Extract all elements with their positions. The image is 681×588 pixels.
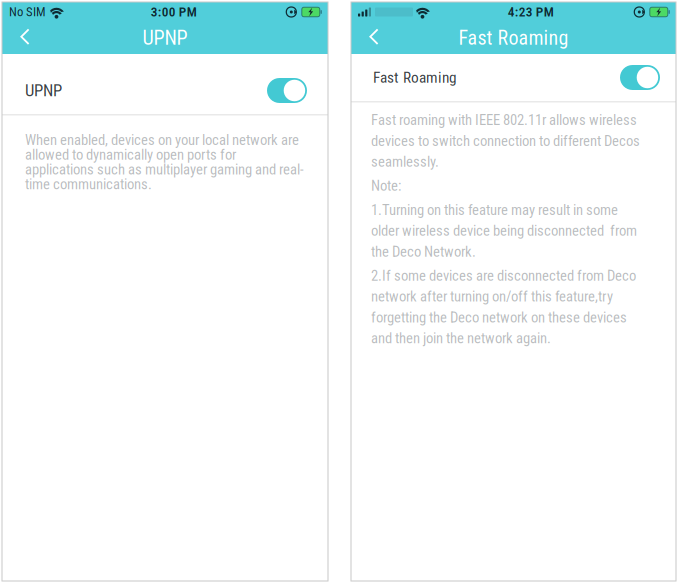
staticText: Fast Roaming xyxy=(458,26,568,50)
staticText: Fast roaming with IEEE 802.11r allows wi… xyxy=(371,111,640,170)
button[interactable]: Toggle UPNP xyxy=(267,78,307,103)
button[interactable]: Back xyxy=(2,22,41,53)
staticText: UPNP xyxy=(142,26,187,50)
staticText: 1.Turning on this feature may result in … xyxy=(371,201,637,260)
staticText: No SIM xyxy=(9,5,46,19)
staticText: 4:23 PM xyxy=(508,4,554,20)
staticText: Note: xyxy=(371,177,401,194)
button[interactable]: Toggle Fast Roaming xyxy=(620,65,660,90)
staticText: Fast Roaming xyxy=(373,68,457,86)
staticText: 3:00 PM xyxy=(151,4,197,20)
button[interactable]: Back xyxy=(351,22,390,53)
staticText: 2.If some devices are disconnected from … xyxy=(371,267,636,347)
staticText: When enabled, devices on your local netw… xyxy=(25,131,304,193)
staticText: UPNP xyxy=(25,81,62,100)
